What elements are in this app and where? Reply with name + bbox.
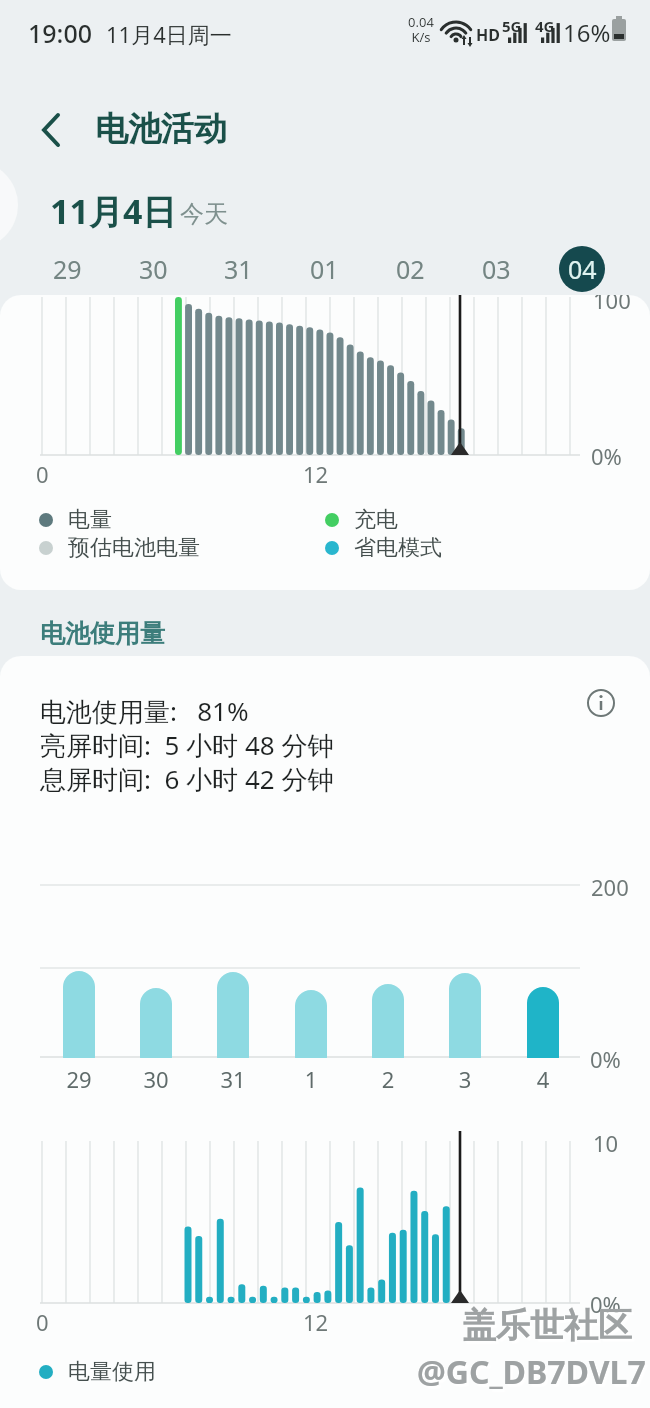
staticText: 19:00 bbox=[28, 16, 93, 50]
staticText: 0% bbox=[590, 1289, 621, 1319]
staticText: 预估电池电量 bbox=[68, 534, 200, 562]
staticText: 16% bbox=[563, 16, 611, 49]
staticText: 200 bbox=[591, 872, 629, 902]
staticText: 11月4日周一 bbox=[106, 19, 232, 49]
button[interactable]: 02 bbox=[380, 246, 440, 292]
staticText: 31 bbox=[208, 1064, 258, 1094]
staticText: 1 bbox=[286, 1064, 336, 1094]
staticText: 4G bbox=[535, 16, 555, 36]
button[interactable]: 04 bbox=[559, 246, 605, 292]
staticText: 充电 bbox=[354, 506, 398, 534]
button[interactable]: 29 bbox=[37, 246, 97, 292]
staticText: 03 bbox=[482, 252, 511, 286]
staticText: 29 bbox=[53, 252, 82, 286]
staticText: 11月4日 bbox=[50, 188, 177, 234]
staticText: 30 bbox=[131, 1064, 181, 1094]
staticText: 息屏时间: 6 小时 42 分钟 bbox=[40, 761, 334, 797]
staticText: 电量使用 bbox=[68, 1358, 156, 1386]
button[interactable] bbox=[26, 105, 76, 155]
staticText: 电池活动 bbox=[95, 108, 227, 150]
staticText: 今天 bbox=[180, 199, 228, 229]
staticText: 0% bbox=[590, 1044, 621, 1074]
button[interactable]: 30 bbox=[123, 246, 183, 292]
staticText: 04 bbox=[568, 252, 597, 286]
staticText: 31 bbox=[224, 252, 253, 286]
staticText: 29 bbox=[54, 1064, 104, 1094]
staticText: 01 bbox=[310, 252, 339, 286]
staticText: 0% bbox=[591, 441, 622, 471]
button[interactable]: 31 bbox=[208, 246, 268, 292]
staticText: 3 bbox=[440, 1064, 490, 1094]
staticText: 12 bbox=[303, 1307, 329, 1337]
staticText: 盖乐世社区 bbox=[462, 1304, 632, 1347]
staticText: 省电模式 bbox=[354, 534, 442, 562]
staticText: HD bbox=[476, 24, 500, 46]
staticText: 0 bbox=[36, 1307, 49, 1337]
staticText: 02 bbox=[396, 252, 425, 286]
staticText: 电池使用量: 81% bbox=[40, 693, 249, 729]
staticText: 5G bbox=[502, 16, 522, 36]
staticText: 30 bbox=[139, 252, 168, 286]
staticText: 0 bbox=[36, 459, 49, 489]
staticText: 100 bbox=[593, 295, 631, 315]
staticText: 10 bbox=[593, 1128, 619, 1158]
staticText: 电池使用量 bbox=[40, 618, 165, 649]
button[interactable]: 01 bbox=[294, 246, 354, 292]
staticText: 0.04 K/s bbox=[398, 13, 444, 1408]
staticText: @GC_DB7DVL7 bbox=[417, 1350, 646, 1394]
staticText: 2 bbox=[363, 1064, 413, 1094]
staticText: 亮屏时间: 5 小时 48 分钟 bbox=[40, 727, 334, 763]
button[interactable] bbox=[575, 677, 627, 729]
staticText: 电量 bbox=[68, 506, 112, 534]
staticText: 12 bbox=[303, 459, 329, 489]
button[interactable]: 03 bbox=[466, 246, 526, 292]
staticText: 4 bbox=[518, 1064, 568, 1094]
